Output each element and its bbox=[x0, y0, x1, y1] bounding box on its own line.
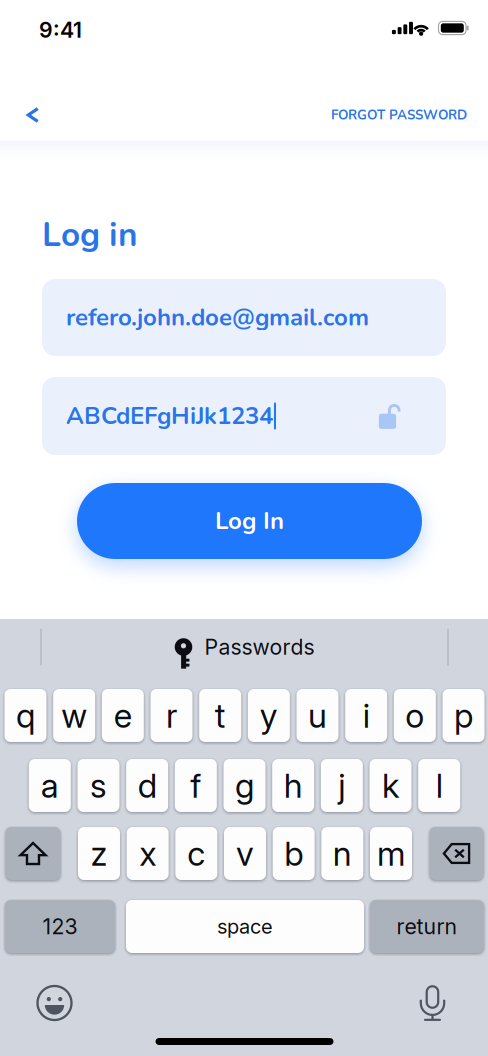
staticText: r bbox=[166, 695, 177, 736]
staticText: g bbox=[235, 765, 254, 806]
button[interactable]: m bbox=[370, 827, 412, 880]
button[interactable]: Show password bbox=[376, 394, 446, 438]
button[interactable]: x bbox=[127, 827, 169, 880]
button[interactable]: k bbox=[369, 759, 411, 812]
button[interactable]: s bbox=[77, 759, 119, 812]
staticText: m bbox=[377, 833, 405, 874]
staticText: Log in bbox=[42, 212, 138, 258]
staticText: return bbox=[396, 914, 457, 939]
button[interactable]: Dictation bbox=[409, 969, 455, 1025]
staticText: l bbox=[436, 765, 443, 806]
button[interactable]: e bbox=[102, 689, 144, 742]
button[interactable]: t bbox=[199, 689, 241, 742]
button[interactable]: f bbox=[175, 759, 217, 812]
button[interactable]: Passwords bbox=[160, 625, 328, 669]
staticText: v bbox=[236, 833, 254, 874]
staticText: space bbox=[217, 914, 273, 939]
staticText: t bbox=[215, 695, 226, 736]
button[interactable]: n bbox=[321, 827, 363, 880]
staticText: Log In bbox=[215, 505, 284, 537]
button[interactable]: j bbox=[321, 759, 363, 812]
staticText: n bbox=[333, 833, 352, 874]
staticText: s bbox=[90, 765, 107, 806]
button[interactable]: q bbox=[4, 689, 46, 742]
button[interactable]: Shift bbox=[5, 827, 60, 880]
staticText: h bbox=[284, 765, 303, 806]
button[interactable]: h bbox=[272, 759, 314, 812]
staticText: 9:41 bbox=[39, 17, 82, 43]
staticText: o bbox=[405, 695, 424, 736]
staticText: i bbox=[363, 695, 370, 736]
button[interactable]: p bbox=[442, 689, 484, 742]
button[interactable]: d bbox=[126, 759, 168, 812]
staticText: b bbox=[284, 833, 303, 874]
staticText: x bbox=[139, 833, 156, 874]
button[interactable]: Log In bbox=[77, 483, 422, 559]
staticText: z bbox=[90, 833, 107, 874]
button[interactable]: return bbox=[370, 900, 484, 953]
staticText: ABCdEFgHiJk1234 bbox=[66, 400, 273, 432]
staticText: p bbox=[454, 695, 473, 736]
button[interactable]: FORGOT PASSWORD bbox=[321, 94, 477, 136]
staticText: e bbox=[114, 695, 132, 736]
staticText: 123 bbox=[42, 914, 77, 939]
button[interactable]: i bbox=[345, 689, 387, 742]
staticText: y bbox=[260, 695, 278, 736]
button[interactable]: a bbox=[29, 759, 71, 812]
staticText: k bbox=[382, 765, 399, 806]
button[interactable]: Emoji keyboard bbox=[27, 969, 81, 1023]
button[interactable]: Back bbox=[11, 93, 55, 137]
button[interactable]: g bbox=[223, 759, 265, 812]
button[interactable]: y bbox=[248, 689, 290, 742]
staticText: a bbox=[41, 765, 59, 806]
staticText: f bbox=[190, 765, 201, 806]
button[interactable]: space bbox=[126, 900, 364, 953]
staticText: q bbox=[16, 695, 35, 736]
button[interactable]: z bbox=[78, 827, 120, 880]
staticText: w bbox=[61, 695, 87, 736]
button[interactable]: Delete bbox=[429, 827, 483, 880]
button[interactable]: u bbox=[296, 689, 338, 742]
button[interactable]: l bbox=[418, 759, 460, 812]
button[interactable]: o bbox=[394, 689, 436, 742]
button[interactable]: w bbox=[53, 689, 95, 742]
staticText: c bbox=[187, 833, 205, 874]
staticText: refero.john.doe@gmail.com bbox=[66, 301, 369, 334]
staticText: Passwords bbox=[204, 634, 314, 660]
staticText: d bbox=[138, 765, 157, 806]
button[interactable]: v bbox=[224, 827, 266, 880]
button[interactable]: c bbox=[175, 827, 217, 880]
staticText: u bbox=[308, 695, 327, 736]
button[interactable]: 123 bbox=[5, 900, 115, 953]
staticText: j bbox=[338, 765, 345, 806]
staticText: FORGOT PASSWORD bbox=[331, 106, 467, 124]
button[interactable]: r bbox=[150, 689, 192, 742]
button[interactable]: b bbox=[273, 827, 315, 880]
